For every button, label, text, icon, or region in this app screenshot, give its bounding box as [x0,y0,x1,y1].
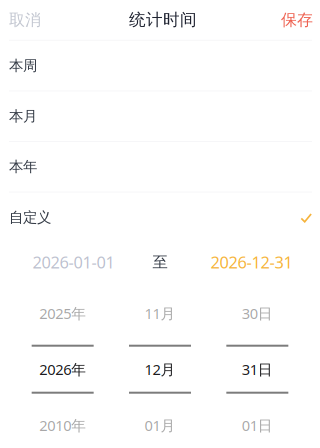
staticText: 2025年 [39,303,86,323]
staticText: 本月 [9,107,37,125]
staticText: 保存 [281,10,313,30]
button[interactable]: 2026-01-01 [0,248,147,276]
button[interactable]: 本月 [0,91,320,141]
staticText: 统计时间 [129,9,197,30]
staticText: 2026-12-31 [210,251,292,273]
staticText: 01月 [144,415,175,435]
staticText: 取消 [9,10,41,30]
staticText: 30日 [242,303,273,323]
staticText: 2026-01-01 [32,251,114,273]
button[interactable]: 本年 [0,142,320,192]
staticText: 11月 [144,303,175,323]
staticText: 2026年 [39,359,86,379]
staticText: 01日 [242,415,273,435]
button[interactable]: 2026-12-31 [173,248,320,276]
staticText: 2010年 [39,415,86,435]
staticText: 31日 [242,359,273,379]
button[interactable]: 保存 [274,0,320,40]
staticText: 本年 [9,158,37,176]
staticText: 本周 [9,56,37,75]
button[interactable]: 本周 [0,41,320,90]
button[interactable]: 取消 [0,0,50,40]
staticText: 自定义 [9,208,51,226]
button[interactable]: 自定义 [0,193,320,242]
staticText: 至 [152,252,167,272]
staticText: 12月 [144,359,175,379]
